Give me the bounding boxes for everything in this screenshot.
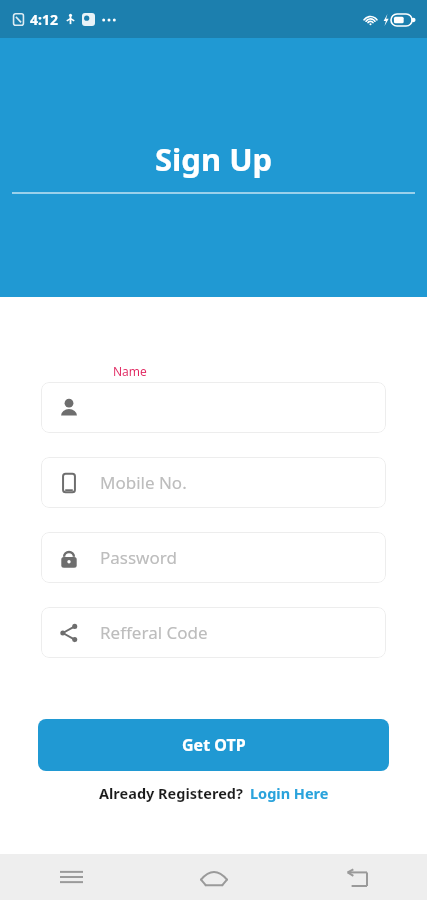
button[interactable]: Referral code — [41, 607, 386, 658]
button[interactable]: Home — [143, 854, 285, 900]
staticText: Already Registered? — [99, 783, 243, 803]
button[interactable]: Password — [41, 532, 386, 583]
staticText: Get OTP — [182, 734, 246, 756]
button[interactable]: Get OTP — [38, 719, 389, 771]
button[interactable]: Login Here — [250, 783, 329, 803]
staticText: Sign Up — [155, 138, 273, 180]
button[interactable]: Recents — [0, 854, 143, 900]
staticText: Login Here — [250, 783, 329, 803]
button[interactable]: Back — [285, 854, 427, 900]
staticText: Mobile No. — [100, 471, 187, 494]
staticText: 4:12 — [30, 10, 58, 29]
button[interactable]: Name — [41, 382, 386, 433]
staticText: Password — [100, 546, 177, 569]
button[interactable]: Mobile number — [41, 457, 386, 508]
staticText: Name — [113, 363, 147, 379]
staticText: Refferal Code — [100, 621, 208, 644]
